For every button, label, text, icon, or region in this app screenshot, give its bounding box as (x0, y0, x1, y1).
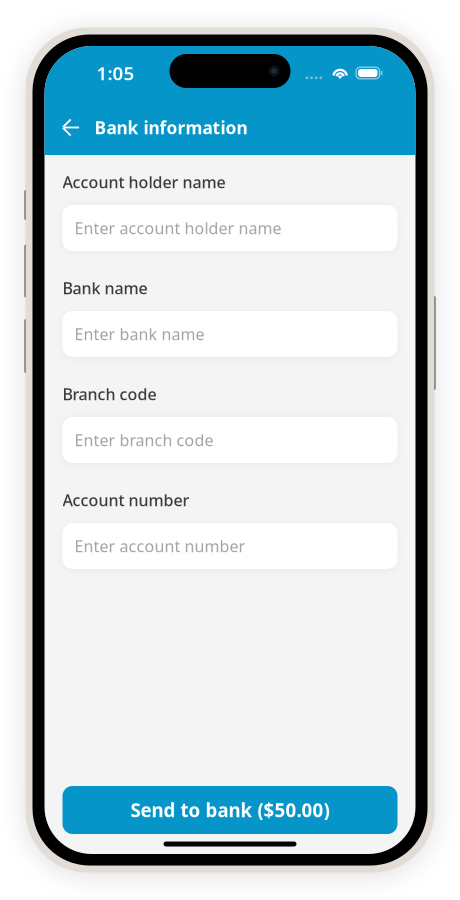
staticText: Bank name (62, 277, 147, 299)
button[interactable]: Enter bank name (62, 311, 397, 357)
staticText: Enter account holder name (74, 217, 281, 239)
button[interactable]: Send to bank ($50.00) (62, 786, 397, 834)
staticText: Account holder name (62, 171, 225, 193)
button[interactable]: Enter account number (62, 523, 397, 569)
button[interactable]: Enter account holder name (62, 205, 397, 251)
staticText: Enter branch code (74, 429, 213, 451)
staticText: Enter bank name (74, 323, 204, 345)
staticText: Branch code (62, 383, 156, 405)
staticText: Bank information (94, 116, 247, 139)
staticText: Send to bank ($50.00) (130, 798, 329, 822)
staticText: 1:05 (96, 61, 134, 85)
button[interactable]: Back (53, 105, 87, 149)
staticText: Account number (62, 489, 189, 511)
button[interactable]: Enter branch code (62, 417, 397, 463)
staticText: Enter account number (74, 535, 245, 557)
